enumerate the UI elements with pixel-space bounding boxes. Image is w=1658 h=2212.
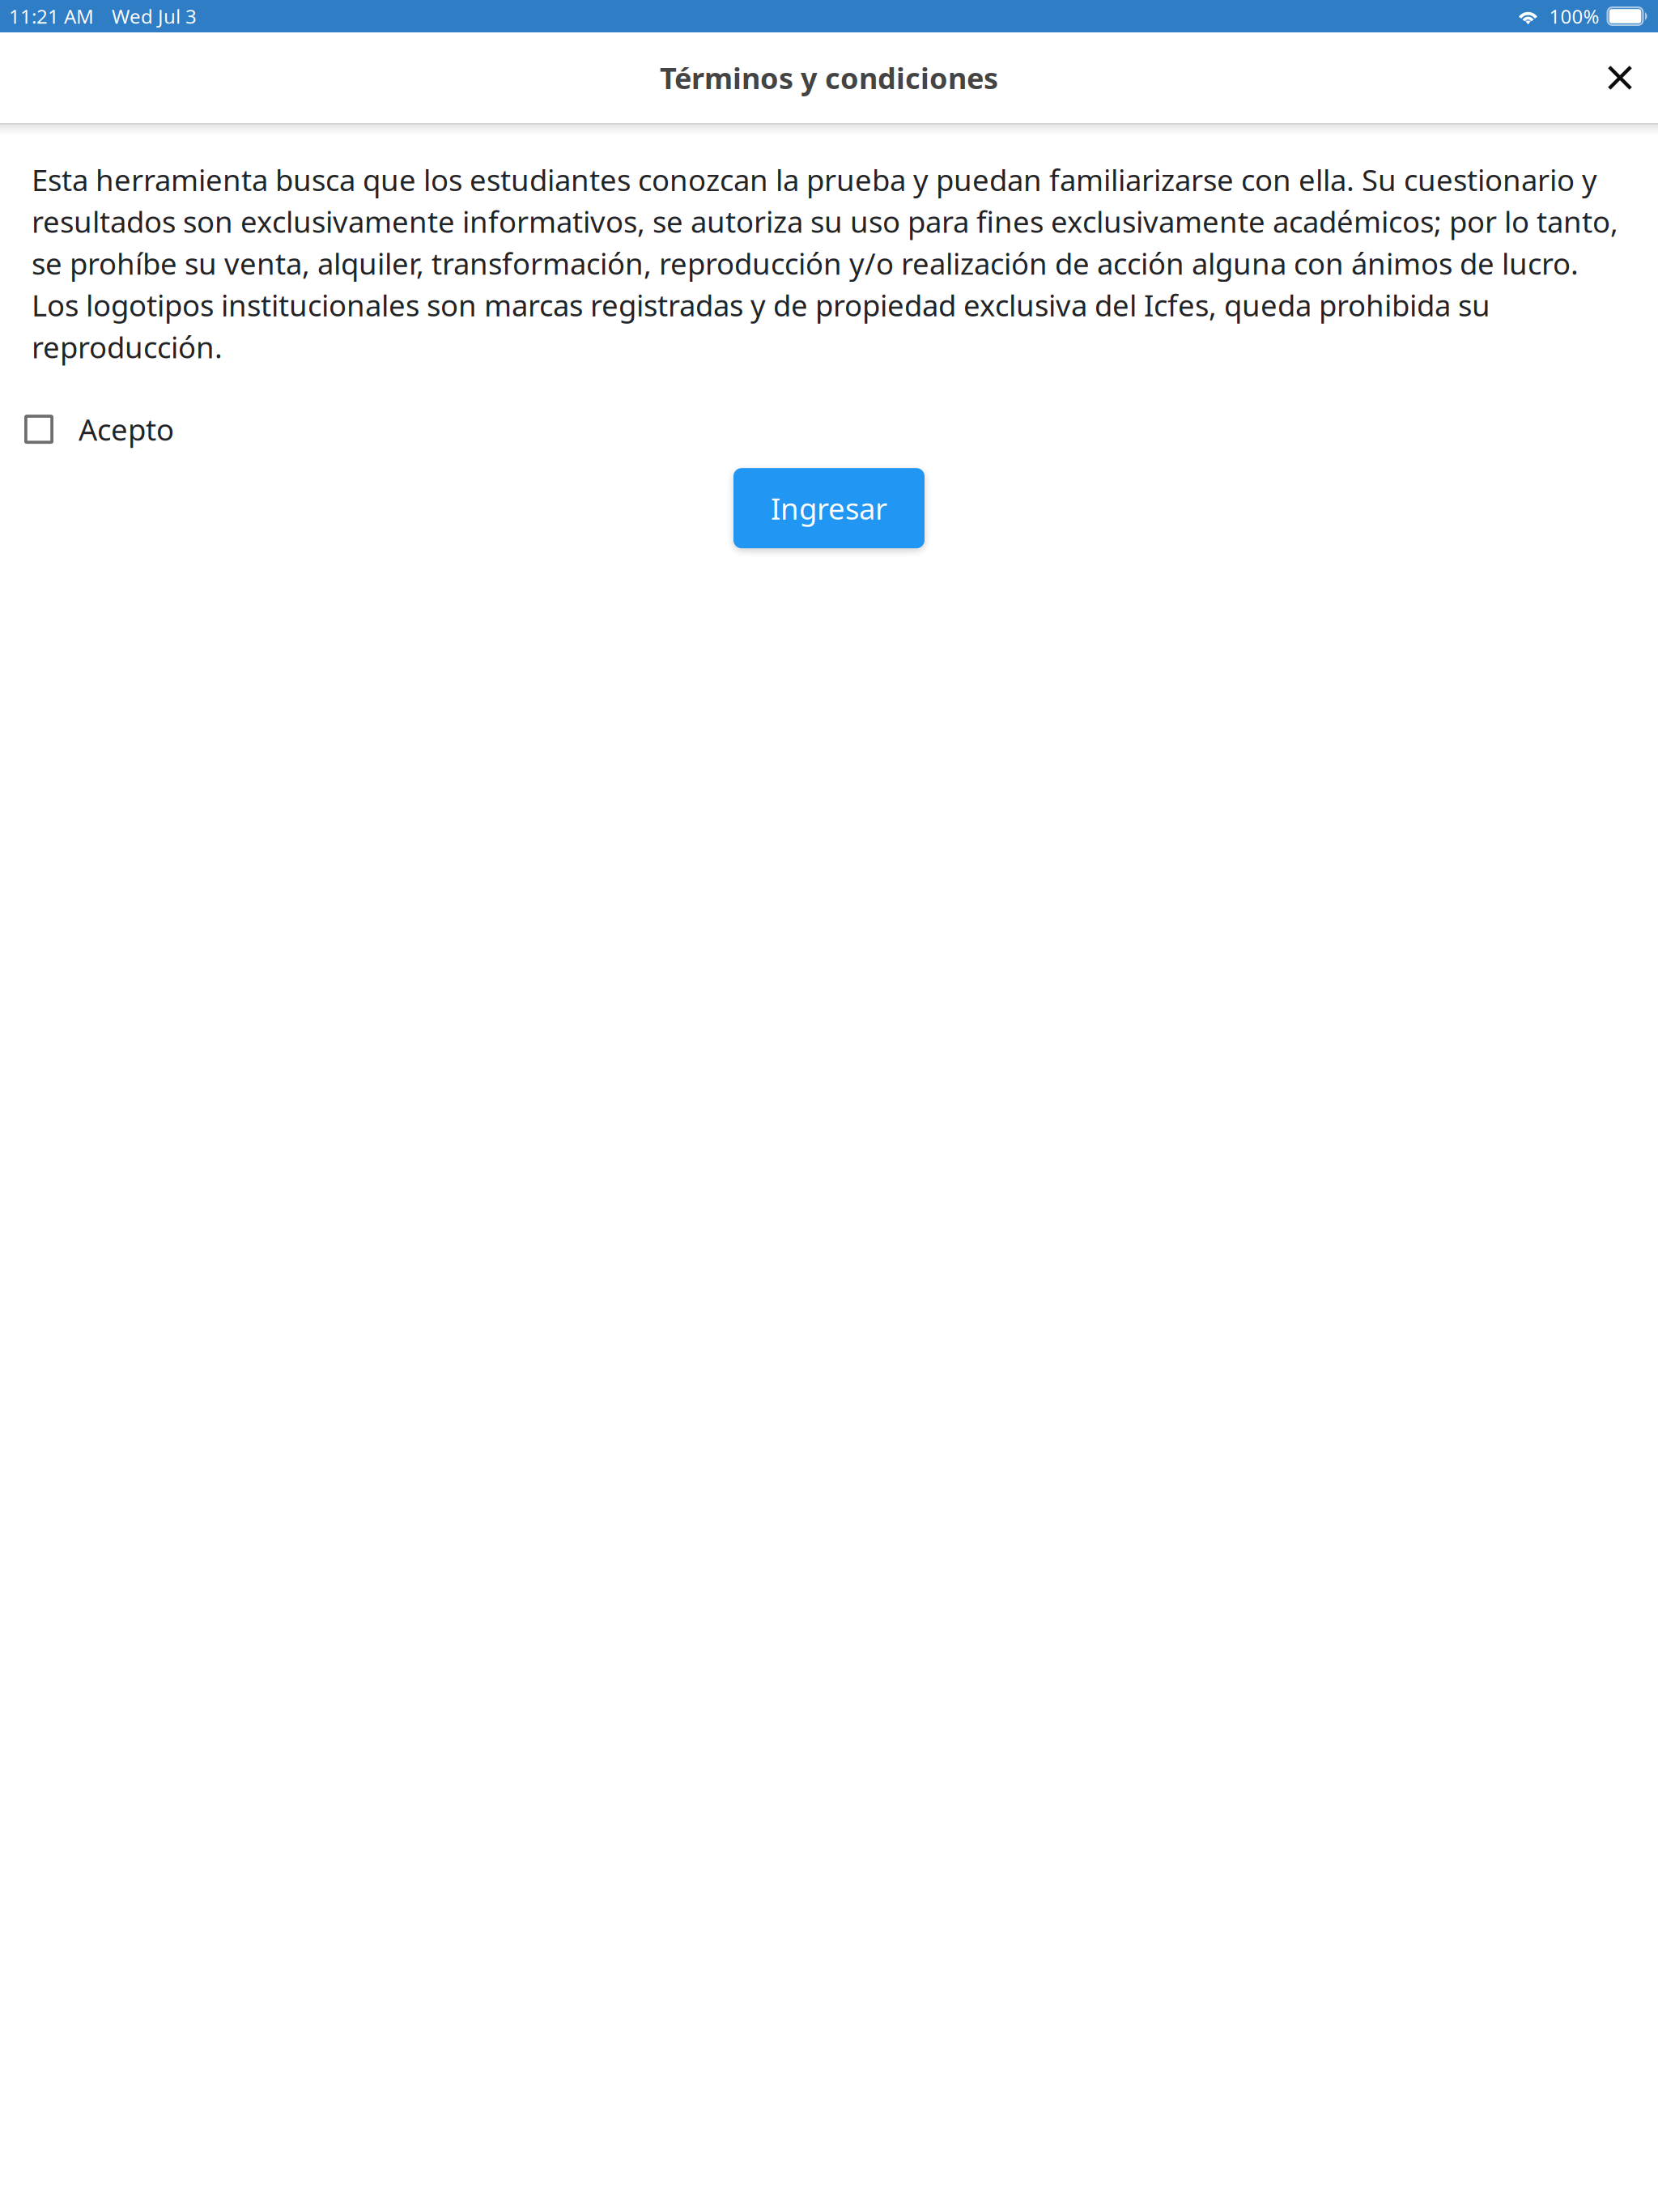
staticText: Ingresar (771, 488, 887, 528)
staticText: Acepto (79, 409, 174, 449)
staticText: 100% (1549, 3, 1599, 29)
staticText: reproducción. (32, 327, 223, 367)
button[interactable]: Ingresar (733, 468, 925, 548)
button[interactable]: Acepto (0, 415, 1658, 444)
staticText: Esta herramienta busca que los estudiant… (32, 160, 1597, 200)
staticText: Wed Jul 3 (112, 3, 197, 29)
staticText: Los logotipos institucionales son marcas… (32, 285, 1490, 325)
staticText: resultados son exclusivamente informativ… (32, 201, 1618, 241)
button[interactable]: Cerrar (1591, 49, 1649, 107)
staticText: 11:21 AM (9, 3, 94, 29)
staticText: Términos y condiciones (660, 58, 998, 98)
staticText: se prohíbe su venta, alquiler, transform… (32, 243, 1579, 283)
